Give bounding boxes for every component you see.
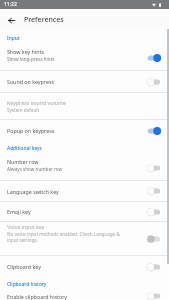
staticText: input settings. xyxy=(7,237,38,243)
button[interactable]: Number row xyxy=(0,155,169,180)
button[interactable]: Emoji key xyxy=(0,202,169,221)
staticText: 11:22 xyxy=(4,1,17,8)
staticText: Preferences xyxy=(24,15,64,25)
staticText: Sound on keypress xyxy=(7,78,54,85)
staticText: Show key hints xyxy=(7,48,44,55)
staticText: Popup on keypress xyxy=(7,127,55,134)
staticText: Clipboard key xyxy=(7,263,41,270)
staticText: Voice input key xyxy=(7,223,45,230)
staticText: No voice input methods enabled. Check La… xyxy=(7,231,120,237)
button[interactable]: Voice input key xyxy=(0,222,169,255)
staticText: Language switch key xyxy=(7,188,59,195)
staticText: Always show number row xyxy=(7,166,63,172)
button[interactable]: Language switch key xyxy=(0,181,169,201)
staticText: Emoji key xyxy=(7,208,31,215)
button[interactable]: Sound on keypress xyxy=(0,71,169,92)
staticText: Show long-press hints xyxy=(7,56,55,62)
button[interactable]: Clipboard key xyxy=(0,256,169,277)
staticText: Clipboard history xyxy=(7,281,47,288)
button[interactable]: Navigate up xyxy=(3,12,19,28)
button[interactable]: Popup on keypress xyxy=(0,120,169,141)
button[interactable]: Show key hints xyxy=(0,46,169,70)
staticText: System default xyxy=(7,107,40,113)
staticText: Enable clipboard history xyxy=(7,293,68,300)
button[interactable]: Keypress sound volume xyxy=(0,93,169,119)
staticText: Input xyxy=(7,35,20,42)
staticText: Keypress sound volume xyxy=(7,99,67,106)
button[interactable]: Enable clipboard history xyxy=(0,292,169,300)
staticText: Number row xyxy=(7,158,39,165)
staticText: Additional keys xyxy=(7,145,42,152)
